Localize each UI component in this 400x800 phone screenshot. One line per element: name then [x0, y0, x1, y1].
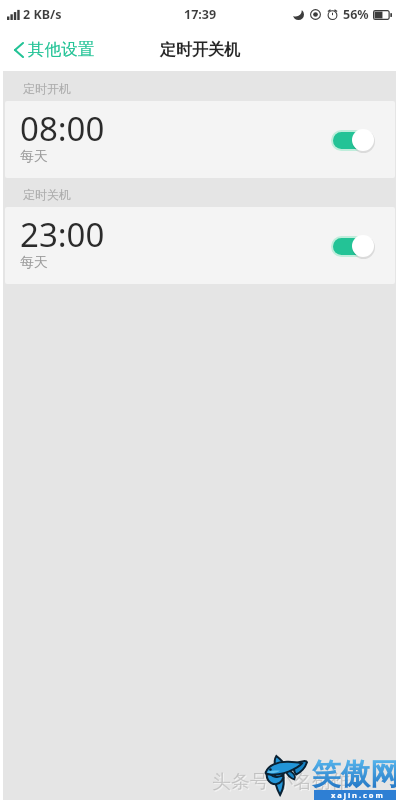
staticText: 2 KB/s	[23, 6, 62, 23]
button[interactable]: 23:00	[5, 207, 395, 284]
staticText: 笑傲网	[312, 756, 399, 793]
staticText: x a j i n . c o m	[331, 790, 383, 800]
staticText: 头条号 小名创作	[212, 768, 350, 794]
button[interactable]: Toggle	[332, 234, 374, 258]
staticText: 23:00	[20, 212, 105, 257]
staticText: 定时关机	[23, 187, 71, 202]
button[interactable]: 08:00	[5, 101, 395, 178]
staticText: 每天	[20, 254, 48, 272]
staticText: 每天	[20, 148, 48, 166]
staticText: 定时开关机	[160, 40, 240, 60]
staticText: 08:00	[20, 106, 105, 151]
staticText: 定时开机	[23, 81, 71, 96]
button[interactable]: Back to 其他设置	[0, 31, 106, 68]
staticText: 其他设置	[28, 39, 94, 60]
staticText: 头条号 小名创作	[213, 769, 351, 795]
button[interactable]: Toggle	[332, 128, 374, 152]
staticText: 56%	[343, 6, 369, 23]
staticText: 17:39	[184, 6, 217, 23]
